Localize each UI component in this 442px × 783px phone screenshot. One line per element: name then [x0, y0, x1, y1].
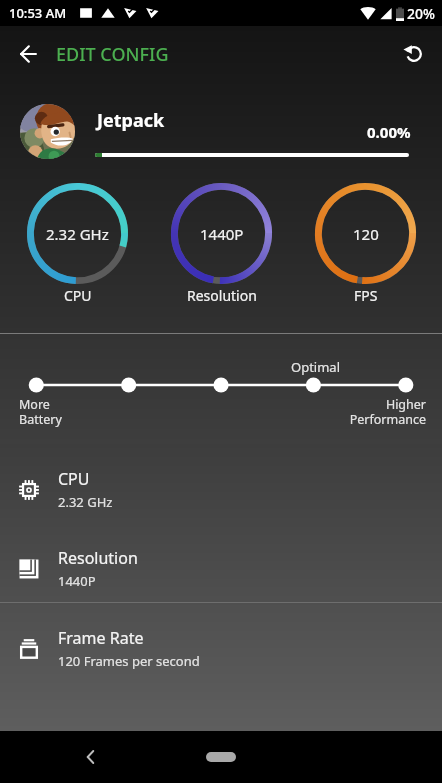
- staticText: 2.32 GHz: [58, 493, 113, 511]
- button[interactable]: Reset: [392, 32, 436, 76]
- staticText: CPU: [64, 286, 92, 305]
- staticText: 1440P: [200, 224, 244, 244]
- staticText: CPU: [58, 468, 90, 490]
- button[interactable]: Home: [206, 752, 236, 762]
- staticText: 10:53 AM: [9, 4, 67, 22]
- button[interactable]: CPU: [0, 444, 442, 523]
- button[interactable]: Back: [73, 740, 107, 774]
- staticText: Frame Rate: [58, 627, 144, 649]
- staticText: 0.00%: [367, 122, 411, 142]
- staticText: More Battery: [19, 396, 62, 428]
- staticText: Resolution: [187, 286, 257, 305]
- staticText: FPS: [354, 286, 378, 305]
- staticText: 1440P: [58, 572, 96, 590]
- staticText: EDIT CONFIG: [56, 42, 169, 67]
- staticText: 2.32 GHz: [46, 224, 109, 244]
- button[interactable]: Resolution: [0, 523, 442, 602]
- staticText: Resolution: [58, 547, 138, 569]
- staticText: 20%: [407, 4, 435, 23]
- staticText: 120: [353, 224, 379, 244]
- staticText: Higher Performance: [349, 396, 426, 428]
- button[interactable]: Frame Rate: [0, 603, 442, 682]
- staticText: Jetpack: [97, 108, 165, 133]
- staticText: 120 Frames per second: [58, 652, 200, 670]
- staticText: Optimal: [291, 358, 340, 376]
- button[interactable]: Back: [8, 34, 48, 74]
